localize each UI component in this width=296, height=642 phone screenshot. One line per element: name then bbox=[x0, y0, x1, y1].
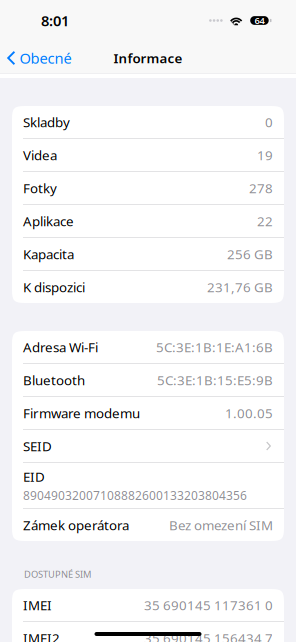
staticText: Aplikace bbox=[23, 212, 74, 230]
staticText: Skladby bbox=[23, 113, 70, 131]
staticText: Informace bbox=[113, 49, 182, 67]
button[interactable]: Obecné bbox=[0, 43, 79, 73]
staticText: Videa bbox=[23, 146, 57, 164]
staticText: IMEI2 bbox=[23, 629, 60, 642]
staticText: 278 bbox=[249, 179, 273, 197]
staticText: 8:01 bbox=[41, 11, 69, 30]
staticText: DOSTUPNÉ SIM bbox=[24, 568, 91, 580]
staticText: Fotky bbox=[23, 179, 57, 197]
button[interactable]: SEID bbox=[12, 430, 284, 462]
staticText: 5C:3E:1B:15:E5:9B bbox=[157, 371, 273, 389]
staticText: 64 bbox=[254, 14, 264, 27]
staticText: Bez omezení SIM bbox=[169, 516, 273, 534]
staticText: 256 GB bbox=[227, 245, 273, 263]
staticText: EID bbox=[23, 468, 45, 485]
staticText: Bluetooth bbox=[23, 371, 85, 389]
staticText: Kapacita bbox=[23, 245, 74, 263]
staticText: 5C:3E:1B:1E:A1:6B bbox=[156, 338, 273, 356]
staticText: K dispozici bbox=[23, 278, 85, 296]
staticText: 0 bbox=[265, 113, 273, 131]
staticText: IMEI bbox=[23, 596, 52, 614]
staticText: SEID bbox=[23, 437, 52, 455]
staticText: Obecné bbox=[20, 48, 72, 68]
staticText: 22 bbox=[257, 212, 273, 230]
staticText: Adresa Wi-Fi bbox=[23, 338, 98, 356]
staticText: 231,76 GB bbox=[207, 278, 273, 296]
staticText: 35 690145 156434 7 bbox=[144, 629, 273, 642]
staticText: 19 bbox=[257, 146, 273, 164]
staticText: 89049032007108882600133203804356 bbox=[23, 487, 247, 503]
staticText: 1.00.05 bbox=[225, 404, 273, 422]
staticText: Zámek operátora bbox=[23, 516, 129, 534]
staticText: Firmware modemu bbox=[23, 404, 140, 422]
staticText: 35 690145 117361 0 bbox=[144, 596, 273, 614]
